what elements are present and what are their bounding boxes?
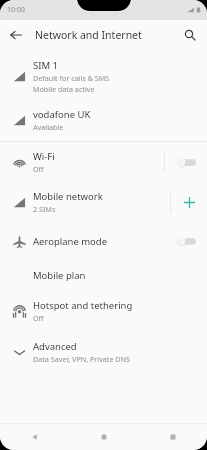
staticText: Default for calls & SMS xyxy=(33,73,110,83)
button[interactable]: Advanced xyxy=(0,331,207,373)
staticText: Mobile network xyxy=(33,190,103,203)
staticText: 10:00 xyxy=(7,5,25,15)
staticText: Network and Internet xyxy=(35,28,142,42)
button[interactable]: Mobile network xyxy=(0,182,207,222)
button[interactable]: Hotspot and tethering xyxy=(0,291,207,331)
staticText: Advanced xyxy=(33,340,77,353)
staticText: SIM 1 xyxy=(33,59,58,72)
button[interactable]: SIM 1 xyxy=(0,50,207,101)
button[interactable]: Wi‑Fi xyxy=(0,142,207,182)
staticText: Hotspot and tethering xyxy=(33,299,133,312)
button[interactable]: Aeroplane mode toggle xyxy=(174,231,198,251)
button[interactable]: Back xyxy=(0,424,69,450)
button[interactable]: vodafone UK xyxy=(0,101,207,141)
staticText: Mobile plan xyxy=(33,269,86,282)
button[interactable]: Search xyxy=(178,23,202,47)
button[interactable]: Mobile plan xyxy=(0,260,207,291)
button[interactable]: Wi-Fi toggle xyxy=(174,152,198,172)
staticText: Aeroplane mode xyxy=(33,235,108,248)
staticText: Off xyxy=(33,313,44,323)
button[interactable]: Back xyxy=(4,23,28,47)
staticText: Available xyxy=(33,122,64,132)
staticText: Data Saver, VPN, Private DNS xyxy=(33,354,131,364)
staticText: vodafone UK xyxy=(33,108,91,121)
button[interactable]: Add network xyxy=(179,192,199,212)
button[interactable]: Aeroplane mode xyxy=(0,222,207,260)
button[interactable]: Home xyxy=(69,424,138,450)
staticText: Mobile data active xyxy=(33,84,95,94)
button[interactable]: Recent apps xyxy=(138,424,207,450)
staticText: 2 SIMs xyxy=(33,204,56,214)
staticText: Off xyxy=(33,164,44,174)
staticText: Wi‑Fi xyxy=(33,150,55,163)
